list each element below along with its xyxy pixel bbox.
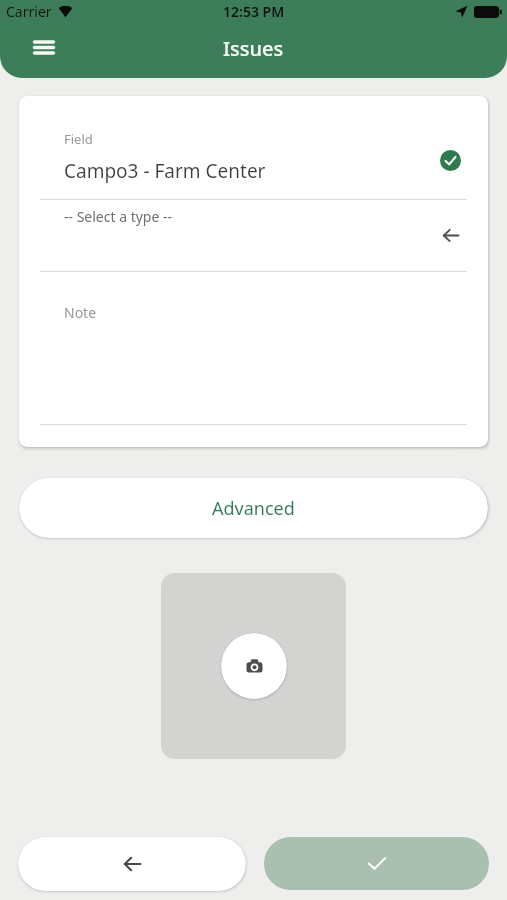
staticText: Carrier [6,2,52,21]
staticText: Advanced [212,496,295,521]
button[interactable] [26,30,62,66]
staticText: -- Select a type -- [64,207,173,226]
button[interactable] [437,221,465,249]
button[interactable] [18,837,246,891]
staticText: Field [64,130,93,148]
staticText: 12:53 PM [223,2,285,21]
button[interactable] [264,837,489,890]
button[interactable]: Advanced [19,478,488,538]
button[interactable] [161,573,346,759]
staticText: Issues [223,35,284,62]
staticText: Campo3 - Farm Center [64,158,266,184]
staticText: Note [64,303,97,322]
